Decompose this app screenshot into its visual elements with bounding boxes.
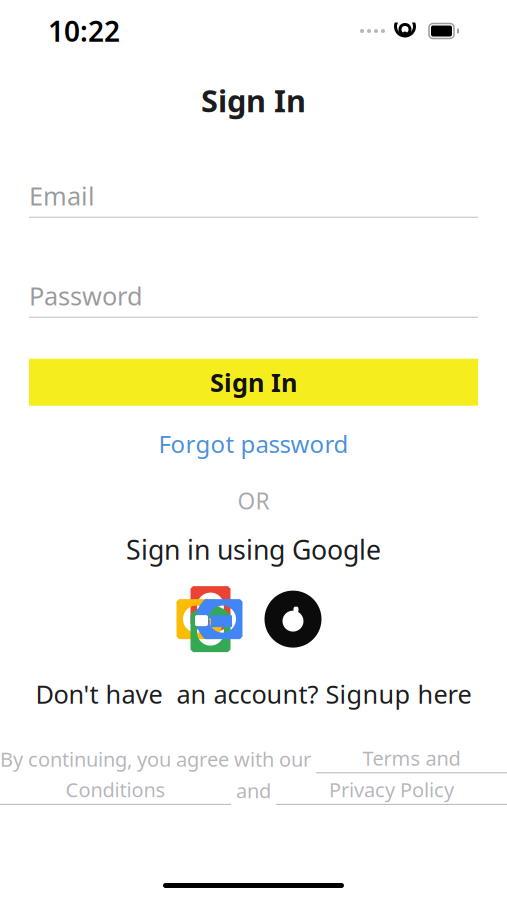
staticText: OR bbox=[237, 486, 269, 516]
staticText: Conditions bbox=[65, 776, 165, 803]
staticText: Sign in using Google bbox=[126, 532, 381, 567]
staticText: Privacy Policy bbox=[329, 776, 454, 803]
staticText: Don't have an account? Signup here bbox=[35, 677, 471, 711]
staticText: and bbox=[231, 777, 276, 804]
staticText: Sign In bbox=[201, 80, 306, 121]
button[interactable]: Password bbox=[29, 283, 478, 318]
staticText: By continuing, you agree with our bbox=[0, 746, 316, 772]
button[interactable]: Email bbox=[29, 183, 478, 218]
button[interactable]: Privacy Policy bbox=[276, 776, 507, 805]
staticText: Email bbox=[29, 179, 95, 212]
staticText: Sign In bbox=[210, 365, 297, 399]
button[interactable]: Forgot password bbox=[150, 424, 356, 464]
staticText: Password bbox=[29, 279, 143, 312]
button[interactable]: Terms and Conditions bbox=[0, 776, 231, 805]
button[interactable]: Sign In bbox=[29, 359, 478, 406]
staticText: Terms and bbox=[362, 745, 460, 771]
staticText: Forgot password bbox=[158, 428, 348, 460]
button[interactable]: Terms and Conditions bbox=[316, 745, 507, 773]
button[interactable]: Don't have an account? Signup here bbox=[25, 673, 481, 715]
staticText: 10:22 bbox=[48, 12, 120, 50]
button[interactable]: Sign in with Apple bbox=[263, 589, 323, 649]
button[interactable]: Sign in with Google bbox=[184, 593, 237, 646]
